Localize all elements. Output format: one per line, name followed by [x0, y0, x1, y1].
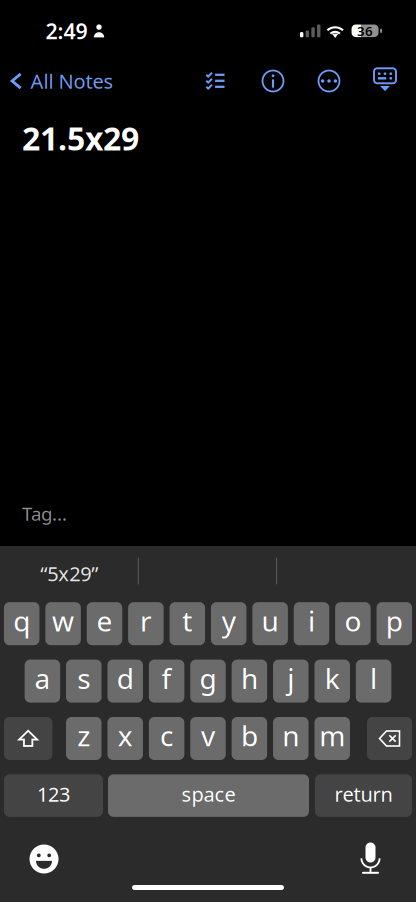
- staticText: e: [96, 602, 112, 639]
- staticText: 21.5x29: [22, 117, 139, 159]
- staticText: g: [199, 659, 216, 697]
- button[interactable]: r: [128, 602, 164, 645]
- button[interactable]: x: [107, 717, 143, 760]
- button[interactable]: m: [314, 717, 350, 760]
- button[interactable]: v: [190, 717, 226, 760]
- button[interactable]: 123: [4, 774, 103, 817]
- button[interactable]: f: [149, 660, 184, 703]
- staticText: a: [34, 659, 50, 697]
- button[interactable]: k: [314, 660, 350, 703]
- button[interactable]: Hide Keyboard: [363, 59, 407, 103]
- staticText: f: [162, 659, 172, 697]
- staticText: t: [182, 602, 192, 639]
- staticText: v: [201, 717, 215, 754]
- staticText: h: [241, 659, 258, 697]
- staticText: 2:49: [45, 17, 87, 45]
- button[interactable]: b: [232, 717, 267, 760]
- button[interactable]: g: [190, 660, 226, 703]
- button[interactable]: i: [294, 602, 329, 645]
- staticText: j: [287, 659, 294, 697]
- staticText: space: [181, 781, 235, 807]
- button[interactable]: u: [252, 602, 288, 645]
- staticText: 36: [357, 22, 373, 40]
- staticText: p: [386, 602, 403, 639]
- button[interactable]: h: [232, 660, 267, 703]
- button[interactable]: s: [66, 660, 102, 703]
- button[interactable]: Dictation: [360, 842, 381, 874]
- button[interactable]: space: [108, 774, 309, 817]
- button[interactable]: Checklist: [193, 57, 237, 101]
- button[interactable]: q: [4, 602, 39, 645]
- staticText: s: [77, 659, 90, 697]
- button[interactable]: t: [169, 602, 205, 645]
- button[interactable]: “5x29”: [0, 550, 139, 596]
- staticText: w: [52, 602, 74, 639]
- button[interactable]: n: [273, 717, 309, 760]
- button[interactable]: Delete: [367, 717, 412, 760]
- staticText: o: [344, 602, 361, 639]
- button[interactable]: Emoji: [29, 844, 58, 873]
- button[interactable]: l: [356, 660, 391, 703]
- button[interactable]: All Notes: [0, 59, 180, 103]
- staticText: d: [117, 659, 134, 697]
- button[interactable]: return: [315, 774, 412, 817]
- button[interactable]: Info: [251, 59, 295, 103]
- staticText: q: [13, 602, 30, 639]
- staticText: m: [319, 717, 345, 754]
- staticText: i: [308, 602, 315, 639]
- staticText: All Notes: [30, 68, 113, 94]
- button[interactable]: y: [211, 602, 246, 645]
- button[interactable]: z: [66, 717, 102, 760]
- staticText: 123: [37, 781, 70, 807]
- staticText: k: [325, 659, 340, 697]
- staticText: return: [334, 781, 392, 807]
- button[interactable]: p: [376, 602, 412, 645]
- button[interactable]: j: [273, 660, 309, 703]
- button[interactable]: c: [149, 717, 184, 760]
- button[interactable]: e: [87, 602, 122, 645]
- staticText: “5x29”: [40, 560, 98, 587]
- staticText: n: [282, 717, 299, 754]
- button[interactable]: More: [307, 59, 351, 103]
- button[interactable]: Shift: [4, 717, 52, 760]
- button[interactable]: a: [25, 660, 60, 703]
- staticText: r: [140, 602, 152, 639]
- staticText: c: [160, 717, 173, 754]
- button[interactable]: d: [107, 660, 143, 703]
- staticText: x: [118, 717, 133, 754]
- button[interactable]: o: [335, 602, 371, 645]
- staticText: z: [77, 717, 90, 754]
- button[interactable]: w: [45, 602, 81, 645]
- staticText: b: [241, 717, 258, 754]
- staticText: u: [262, 602, 279, 639]
- staticText: y: [222, 602, 236, 639]
- staticText: Tag...: [22, 501, 67, 526]
- staticText: l: [370, 659, 377, 697]
